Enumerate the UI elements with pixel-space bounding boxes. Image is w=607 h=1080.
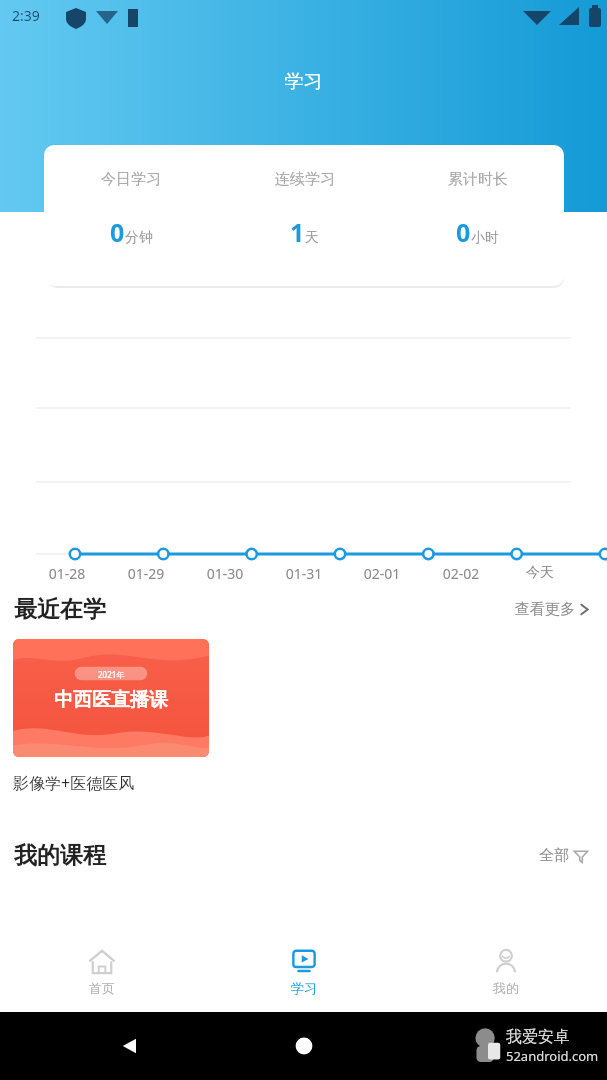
other: Home [294, 1036, 314, 1056]
staticText: 小时 [471, 229, 499, 247]
staticText: 0 [110, 215, 125, 249]
staticText: 分钟 [125, 229, 153, 247]
button[interactable]: Filter courses [533, 840, 595, 871]
staticText: 02-01 [351, 564, 413, 583]
button[interactable]: 2021年 [13, 639, 209, 794]
staticText: 学习 [291, 980, 317, 996]
staticText: 01-31 [273, 564, 335, 583]
button[interactable]: 查看更多 [509, 594, 595, 625]
staticText: 01-28 [36, 564, 98, 583]
staticText: 我的课程 [14, 841, 106, 870]
staticText: 2021年 [98, 669, 125, 680]
staticText: 全部 [539, 846, 569, 865]
staticText: 01-29 [115, 564, 177, 583]
staticText: 我的 [493, 980, 519, 996]
button[interactable]: 累计时长 [391, 145, 564, 249]
staticText: 52android.com [506, 1047, 599, 1065]
staticText: 02-02 [430, 564, 492, 583]
other: Back [118, 1034, 142, 1058]
other: Profile [492, 948, 520, 976]
staticText: 我爱安卓 [506, 1027, 570, 1047]
staticText: 最近在学 [14, 595, 106, 624]
staticText: 1 [290, 215, 305, 249]
staticText: 天 [305, 229, 319, 247]
staticText: 01-30 [194, 564, 256, 583]
staticText: 累计时长 [448, 170, 508, 189]
staticText: 首页 [89, 980, 115, 996]
button[interactable]: Study [203, 940, 405, 996]
button[interactable]: Profile [405, 940, 607, 996]
button[interactable]: 今日学习 [44, 145, 218, 249]
staticText: 2:39 [12, 6, 40, 25]
staticText: 学习 [0, 70, 607, 94]
staticText: 今天 [509, 564, 571, 582]
other: Study [290, 948, 318, 976]
staticText: 连续学习 [275, 170, 335, 189]
staticText: 查看更多 [515, 600, 575, 619]
staticText: 中西医直播课 [54, 688, 168, 712]
button[interactable]: 连续学习 [218, 145, 391, 249]
staticText: 0 [456, 215, 471, 249]
other: Home [88, 948, 116, 976]
staticText: 影像学+医德医风 [13, 772, 135, 794]
button[interactable]: Home [0, 940, 203, 996]
staticText: 今日学习 [101, 170, 161, 189]
